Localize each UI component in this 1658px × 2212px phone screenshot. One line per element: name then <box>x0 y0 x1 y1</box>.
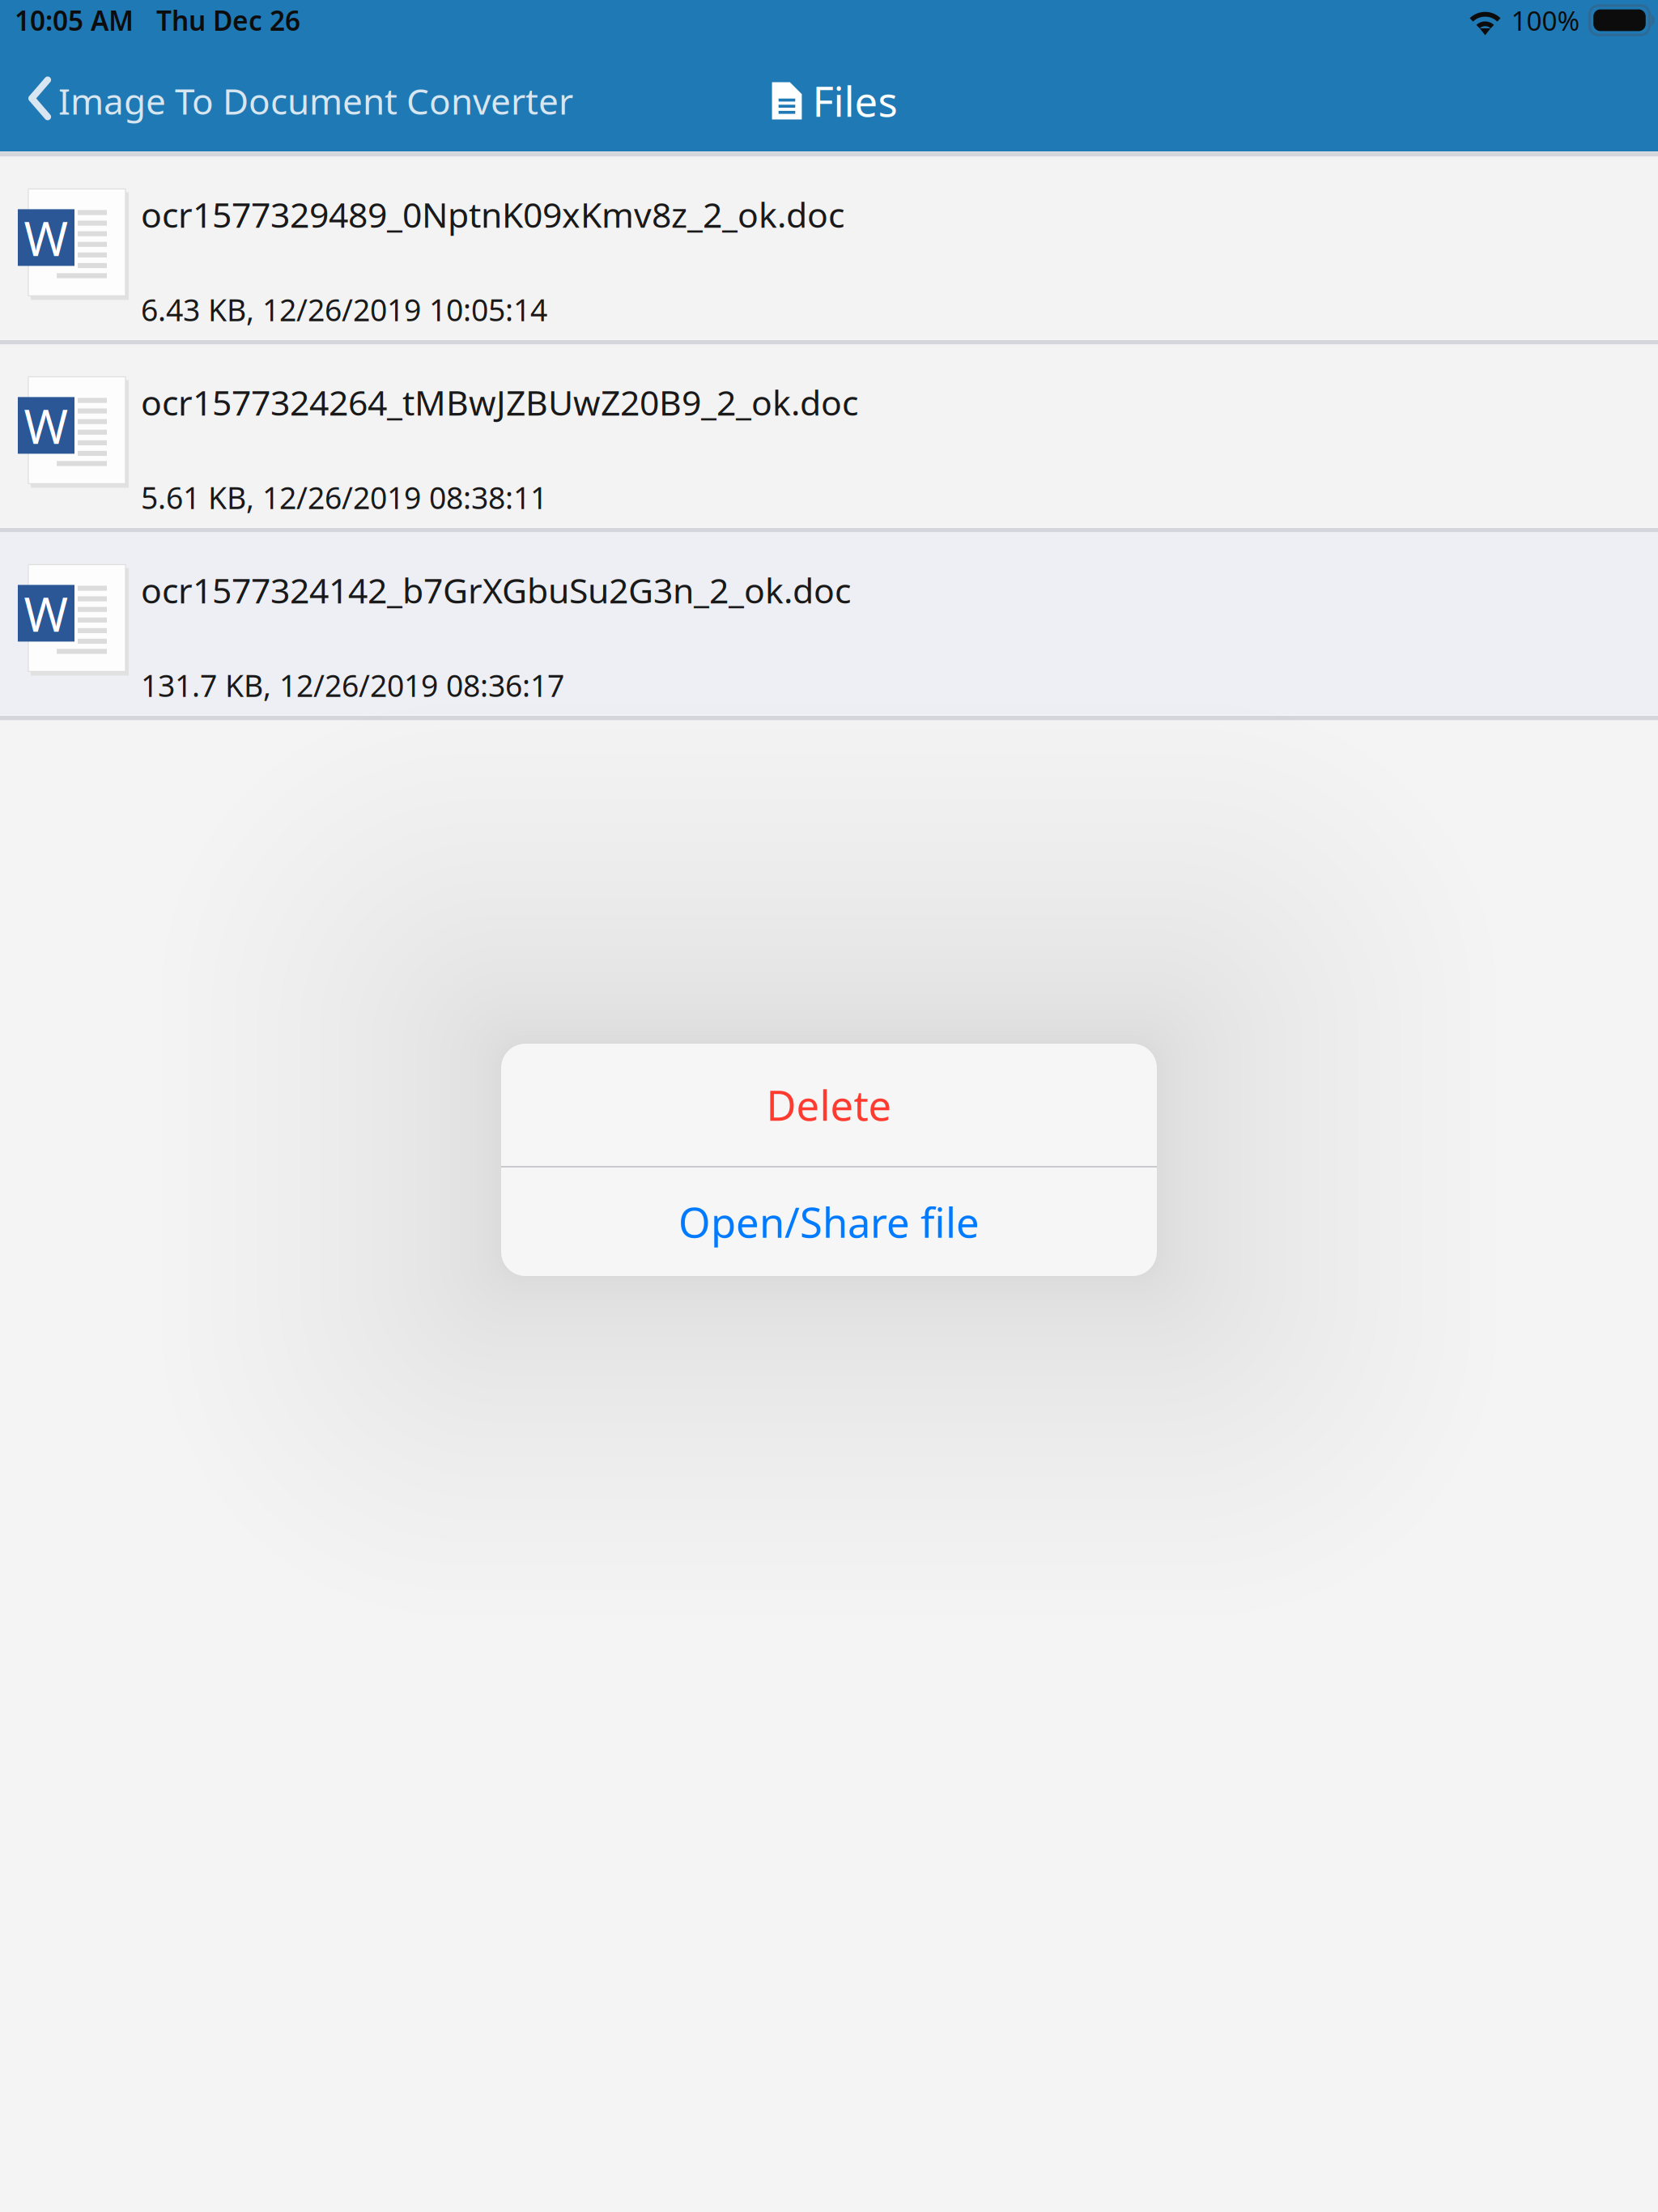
button[interactable]: Files <box>757 62 901 139</box>
staticText: ocr1577324264_tMBwJZBUwZ20B9_2_ok.doc <box>141 379 858 425</box>
staticText: 10:05 AM <box>15 2 134 38</box>
staticText: Image To Document Converter <box>58 77 573 124</box>
staticText: W <box>24 394 68 457</box>
staticText: 6.43 KB, 12/26/2019 10:05:14 <box>141 289 547 330</box>
button[interactable]: Delete <box>501 1044 1157 1166</box>
button[interactable]: Image To Document Converter <box>0 66 588 136</box>
staticText: ocr1577324142_b7GrXGbuSu2G3n_2_ok.doc <box>141 567 851 613</box>
staticText: W <box>24 582 68 645</box>
staticText: 100% <box>1511 2 1580 38</box>
staticText: Delete <box>766 1078 892 1132</box>
button[interactable]: W <box>0 532 1658 715</box>
button[interactable]: W <box>0 157 1658 340</box>
button[interactable]: Open/Share file <box>501 1168 1157 1276</box>
staticText: Thu Dec 26 <box>156 2 300 38</box>
staticText: 131.7 KB, 12/26/2019 08:36:17 <box>141 665 564 705</box>
staticText: Open/Share file <box>678 1195 980 1249</box>
button[interactable]: W <box>0 344 1658 527</box>
staticText: Files <box>812 74 897 128</box>
staticText: 5.61 KB, 12/26/2019 08:38:11 <box>141 477 547 517</box>
staticText: ocr1577329489_0NptnK09xKmv8z_2_ok.doc <box>141 191 844 237</box>
staticText: W <box>24 206 68 269</box>
